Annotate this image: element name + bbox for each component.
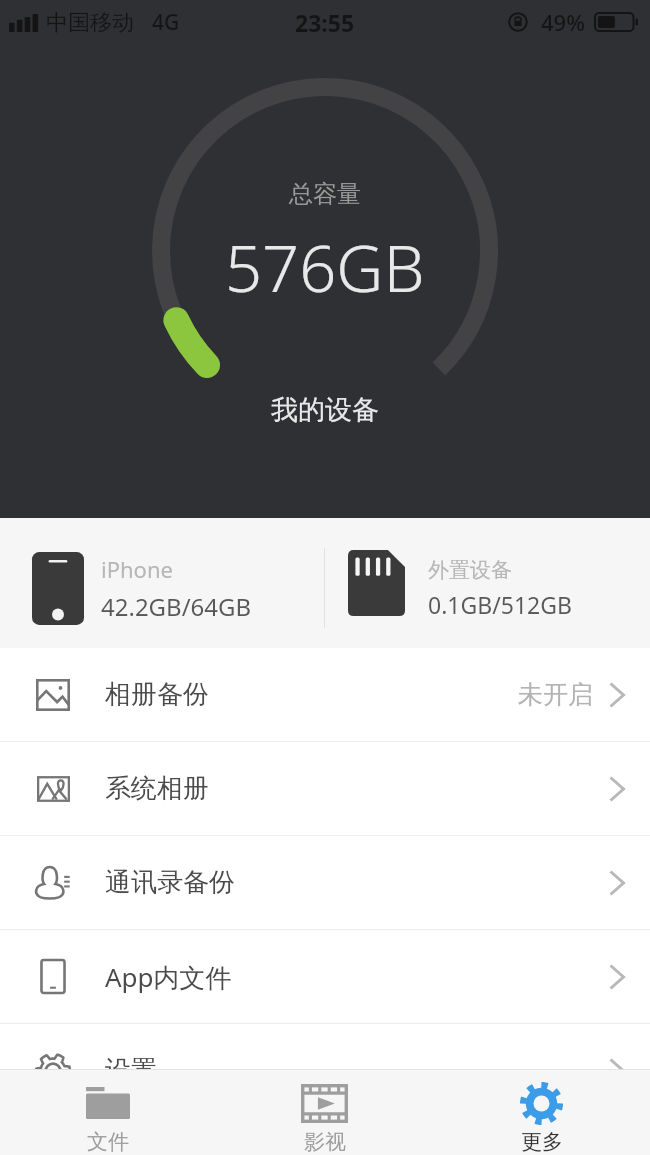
staticText: 42.2GB/64GB [101,590,252,623]
button[interactable]: 通讯录备份 [0,836,650,929]
staticText: 外置设备 [428,557,512,583]
staticText: 相册备份 [105,678,209,711]
staticText: 通讯录备份 [105,866,235,899]
staticText: 文件 [87,1129,129,1155]
staticText: 设置 [105,1054,157,1087]
staticText: 0.1GB/512GB [428,589,572,620]
button[interactable]: 设置 [0,1024,650,1117]
staticText: 中国移动 [46,9,134,37]
staticText: 我的设备 [271,393,379,427]
staticText: 影视 [304,1129,346,1155]
staticText: 系统相册 [105,772,209,805]
staticText: 更多 [521,1129,563,1155]
staticText: 未开启 [518,679,593,710]
button[interactable]: iPhone [32,552,324,625]
button[interactable]: 相册备份 [0,648,650,741]
staticText: 49% [541,7,585,37]
staticText: App内文件 [105,959,232,995]
button[interactable]: 外置设备 [348,550,650,626]
button[interactable]: 更多 [433,1070,650,1155]
staticText: 576GB [225,223,425,312]
staticText: 23:55 [295,7,355,38]
button[interactable]: App内文件 [0,930,650,1023]
staticText: 4G [152,8,180,37]
staticText: 总容量 [289,179,361,209]
staticText: iPhone [101,554,173,584]
button[interactable]: 系统相册 [0,742,650,835]
button[interactable]: 文件 [0,1070,216,1155]
button[interactable]: 影视 [216,1070,433,1155]
